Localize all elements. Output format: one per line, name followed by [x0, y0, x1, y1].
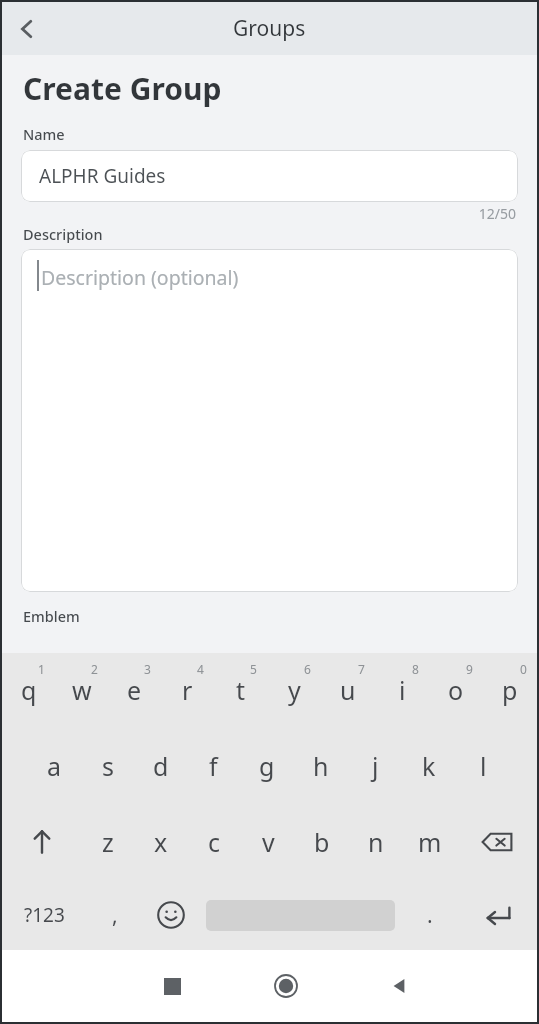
button[interactable]: w [55, 653, 108, 727]
staticText: , [112, 901, 118, 930]
staticText: e [127, 673, 142, 707]
staticText: i [399, 673, 406, 707]
button[interactable]: o [429, 653, 483, 727]
staticText: 2 [91, 661, 98, 677]
staticText: h [313, 749, 329, 783]
button[interactable]: y [267, 653, 321, 727]
staticText: y [288, 673, 301, 707]
staticText: Description (optional) [41, 264, 239, 291]
button[interactable]: Back [343, 950, 457, 1022]
staticText: Description [23, 224, 103, 244]
staticText: g [259, 749, 275, 783]
staticText: x [154, 825, 168, 859]
staticText: k [422, 749, 436, 783]
button[interactable]: Home [229, 950, 343, 1022]
staticText: r [182, 673, 193, 707]
staticText: n [368, 825, 384, 859]
staticText: o [448, 673, 464, 707]
staticText: t [236, 673, 246, 707]
staticText: l [480, 749, 487, 783]
staticText: u [340, 673, 356, 707]
staticText: m [418, 825, 442, 859]
staticText: f [209, 749, 218, 783]
staticText: b [314, 825, 330, 859]
staticText: v [262, 825, 275, 859]
staticText: p [502, 673, 518, 707]
staticText: d [153, 749, 169, 783]
staticText: Name [23, 124, 65, 144]
button[interactable]: ?123 [2, 880, 87, 950]
button[interactable]: Recents [115, 950, 229, 1022]
staticText: Create Group [23, 68, 222, 109]
button[interactable]: , [87, 880, 143, 950]
staticText: s [102, 749, 114, 783]
staticText: 3 [144, 661, 151, 677]
button[interactable]: Shift [2, 804, 81, 880]
button[interactable]: Enter [458, 880, 537, 950]
staticText: a [47, 749, 62, 783]
button[interactable]: Description (optional) [21, 249, 518, 592]
button[interactable]: a [28, 727, 81, 804]
staticText: 5 [250, 661, 257, 677]
button[interactable]: m [403, 804, 457, 880]
button[interactable]: u [321, 653, 375, 727]
button[interactable]: q [2, 653, 55, 727]
staticText: 0 [520, 661, 527, 677]
button[interactable]: . [402, 880, 458, 950]
button[interactable]: n [349, 804, 403, 880]
staticText: j [372, 749, 379, 783]
staticText: 6 [304, 661, 311, 677]
staticText: c [208, 825, 221, 859]
staticText: Groups [233, 14, 306, 43]
button[interactable]: k [402, 727, 456, 804]
staticText: z [102, 825, 114, 859]
button[interactable]: r [161, 653, 214, 727]
staticText: 9 [466, 661, 473, 677]
staticText: 4 [197, 661, 204, 677]
button[interactable]: Backspace [457, 804, 537, 880]
button[interactable]: Back [2, 4, 52, 54]
button[interactable]: l [456, 727, 510, 804]
staticText: Emblem [23, 606, 80, 626]
button[interactable]: h [294, 727, 348, 804]
button[interactable]: d [134, 727, 187, 804]
staticText: 12/50 [2, 204, 516, 223]
button[interactable]: v [241, 804, 295, 880]
staticText: 7 [358, 661, 365, 677]
button[interactable]: t [214, 653, 267, 727]
button[interactable]: g [240, 727, 294, 804]
staticText: 8 [412, 661, 419, 677]
button[interactable]: ALPHR Guides [21, 150, 518, 202]
button[interactable]: x [134, 804, 187, 880]
button[interactable]: Emoji [143, 880, 199, 950]
staticText: ?123 [24, 902, 65, 928]
button[interactable]: f [187, 727, 240, 804]
button[interactable]: z [81, 804, 134, 880]
button[interactable]: b [295, 804, 349, 880]
button[interactable]: j [348, 727, 402, 804]
button[interactable]: e [108, 653, 161, 727]
staticText: w [72, 673, 92, 707]
staticText: q [21, 673, 37, 707]
button[interactable]: c [187, 804, 241, 880]
staticText: . [427, 901, 433, 930]
button[interactable]: Space [199, 880, 402, 950]
button[interactable]: s [81, 727, 134, 804]
staticText: 1 [38, 661, 45, 677]
button[interactable]: p [483, 653, 537, 727]
button[interactable]: i [375, 653, 429, 727]
staticText: ALPHR Guides [39, 163, 166, 189]
